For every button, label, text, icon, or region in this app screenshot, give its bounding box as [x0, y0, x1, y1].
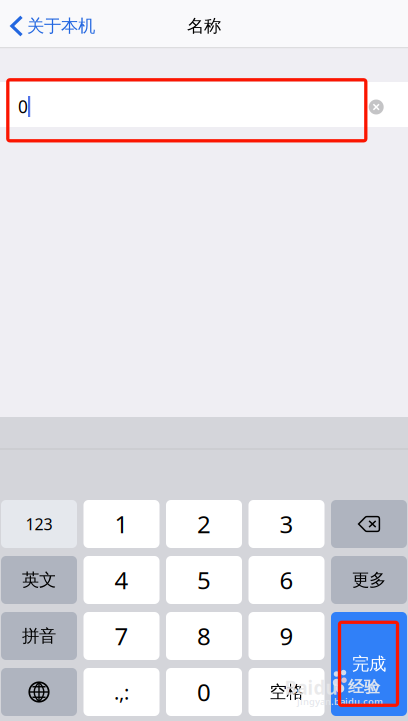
button[interactable]: 6 — [248, 556, 324, 604]
staticText: 0 — [197, 676, 211, 708]
staticText: 完成 — [352, 653, 386, 675]
button[interactable]: 0 — [166, 668, 242, 716]
staticText: 2 — [197, 508, 211, 540]
button[interactable]: 删除 — [331, 500, 407, 548]
staticText: 7 — [114, 620, 128, 652]
staticText: 6 — [279, 564, 293, 596]
staticText: 9 — [279, 620, 293, 652]
button[interactable]: 4 — [83, 556, 159, 604]
staticText: 英文 — [22, 569, 56, 591]
button[interactable]: 123 — [1, 500, 77, 548]
staticText: 关于本机 — [27, 15, 95, 37]
button[interactable]: 5 — [166, 556, 242, 604]
button[interactable]: 3 — [248, 500, 324, 548]
staticText: 3 — [279, 508, 293, 540]
staticText: 8 — [197, 620, 211, 652]
button[interactable]: 更多 — [331, 556, 407, 604]
staticText: 拼音 — [22, 625, 56, 647]
button[interactable]: 完成 — [331, 612, 407, 716]
staticText: 名称 — [187, 15, 221, 37]
staticText: .,: — [114, 679, 129, 705]
button[interactable]: 7 — [83, 612, 159, 660]
button[interactable]: 空格 — [248, 668, 324, 716]
button[interactable]: 英文 — [1, 556, 77, 604]
button[interactable]: 8 — [166, 612, 242, 660]
button[interactable]: 9 — [248, 612, 324, 660]
button[interactable]: 标点 — [83, 668, 159, 716]
staticText: jingyan.baidu.com — [297, 695, 383, 708]
staticText: 经验 — [348, 677, 380, 697]
button[interactable]: 清除 — [361, 92, 391, 122]
staticText: 空格 — [269, 681, 303, 703]
button[interactable]: 1 — [83, 500, 159, 548]
staticText: 更多 — [352, 569, 386, 591]
staticText: Baidu — [284, 675, 337, 700]
staticText: 1 — [114, 508, 128, 540]
button[interactable]: 2 — [166, 500, 242, 548]
staticText: 123 — [25, 513, 52, 535]
button[interactable]: 切换键盘 — [1, 668, 77, 716]
button[interactable]: 拼音 — [1, 612, 77, 660]
staticText: 5 — [197, 564, 211, 596]
button[interactable]: 关于本机 — [0, 4, 112, 48]
staticText: 0 — [18, 95, 28, 118]
staticText: 4 — [114, 564, 128, 596]
